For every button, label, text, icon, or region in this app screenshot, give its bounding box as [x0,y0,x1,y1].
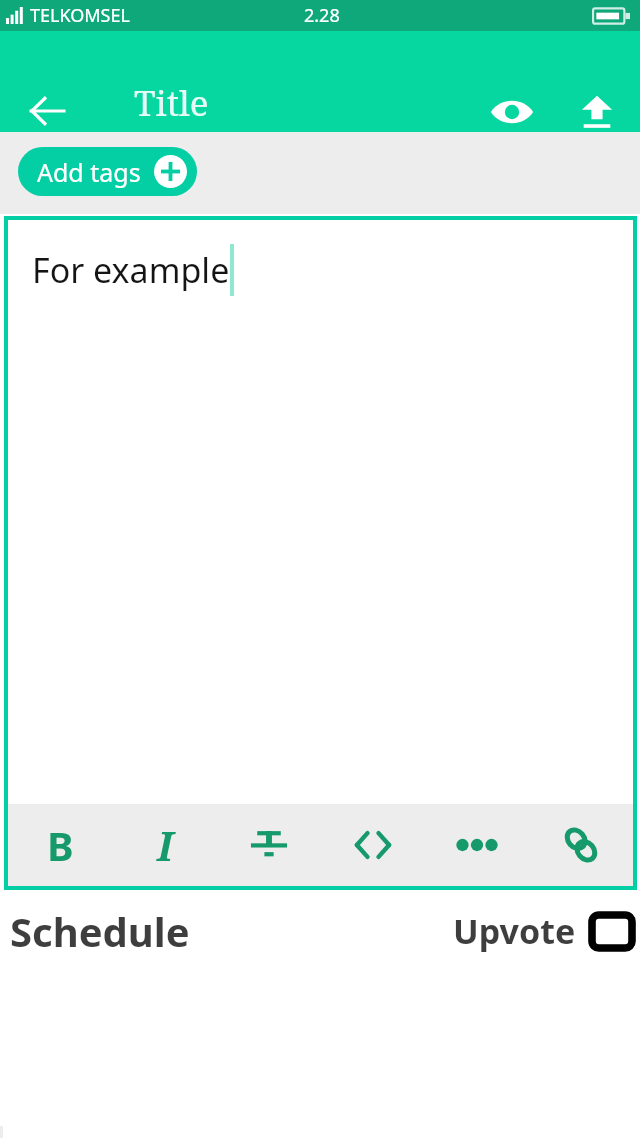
staticText: TELKOMSEL [30,3,130,28]
button[interactable]: Schedule [6,900,194,962]
button[interactable]: Bold [8,804,113,886]
button[interactable]: Back [22,86,72,136]
button[interactable]: Strikethrough [217,804,321,886]
staticText: For example [32,247,230,293]
staticText: B [47,818,74,872]
button[interactable]: Italic [113,804,217,886]
button[interactable]: Publish [571,86,623,138]
staticText: Upvote [453,908,576,954]
button[interactable]: Add tags [18,147,197,196]
staticText: Schedule [10,904,190,958]
button[interactable]: Preview [486,86,538,138]
button[interactable]: Code [321,804,425,886]
staticText: 2.28 [304,3,340,28]
button[interactable]: Upvote [449,904,636,958]
staticText: I [157,818,174,872]
button[interactable]: Link [529,804,633,886]
button[interactable]: More [425,804,529,886]
staticText: Add tags [37,155,141,189]
staticText: Title [134,79,209,127]
